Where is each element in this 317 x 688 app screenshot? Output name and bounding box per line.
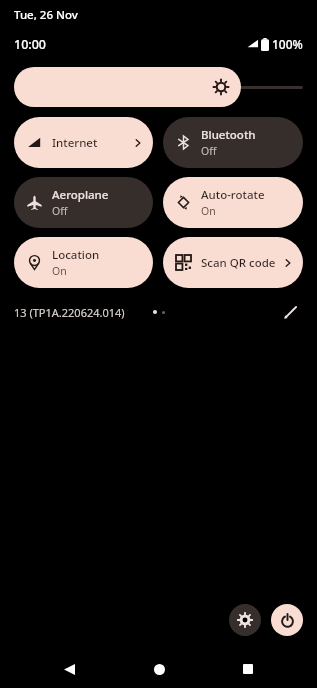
button[interactable]: Auto-rotate (163, 177, 303, 228)
button[interactable]: Edit tiles (279, 300, 303, 324)
button[interactable]: Back (49, 650, 89, 688)
button[interactable]: Aeroplane mode (14, 177, 153, 228)
staticText: Bluetooth (201, 127, 256, 143)
staticText: Off (201, 144, 217, 158)
staticText: On (201, 204, 216, 218)
staticText: 10:00 (14, 36, 47, 53)
button[interactable]: Power (271, 604, 303, 636)
button[interactable]: Location (14, 237, 153, 288)
button[interactable]: Brightness (14, 67, 241, 107)
staticText: Off (52, 204, 68, 218)
staticText: Internet (52, 135, 98, 151)
staticText: Scan QR code (201, 255, 276, 271)
button[interactable]: Home (139, 650, 179, 688)
staticText: On (52, 264, 67, 278)
staticText: 100% (272, 36, 303, 52)
staticText: Tue, 26 Nov (14, 7, 78, 23)
staticText: 13 (TP1A.220624.014) (14, 305, 125, 320)
button[interactable]: Recents (228, 650, 268, 688)
staticText: Aeroplane mode (52, 187, 143, 203)
staticText: Location (52, 247, 100, 263)
button[interactable]: Scan QR code (163, 237, 303, 288)
button[interactable]: Bluetooth (163, 117, 303, 168)
button[interactable]: Settings (229, 604, 261, 636)
staticText: Auto-rotate (201, 187, 265, 203)
button[interactable]: Internet (14, 117, 153, 168)
